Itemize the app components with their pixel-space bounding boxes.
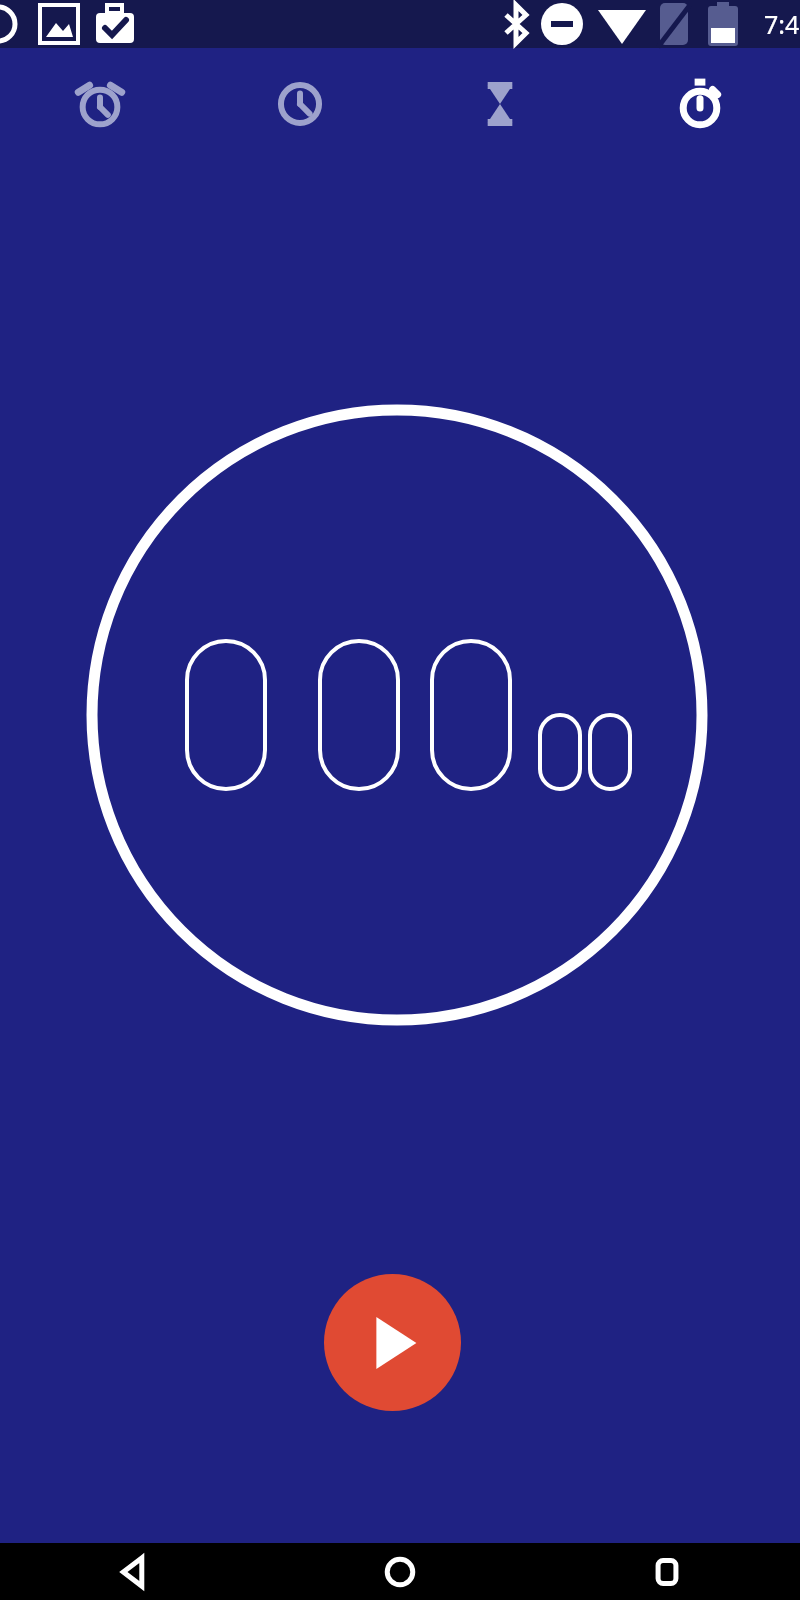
button[interactable]: Recents xyxy=(533,1543,800,1600)
button[interactable]: Start stopwatch xyxy=(324,1274,461,1411)
button[interactable]: Stopwatch xyxy=(600,48,800,160)
staticText: 7:4 xyxy=(764,7,800,41)
button[interactable]: Back xyxy=(0,1543,266,1600)
button[interactable]: Clock xyxy=(200,48,400,160)
button[interactable]: Alarm xyxy=(0,48,200,160)
button[interactable]: Timer xyxy=(400,48,600,160)
button[interactable]: Home xyxy=(266,1543,533,1600)
